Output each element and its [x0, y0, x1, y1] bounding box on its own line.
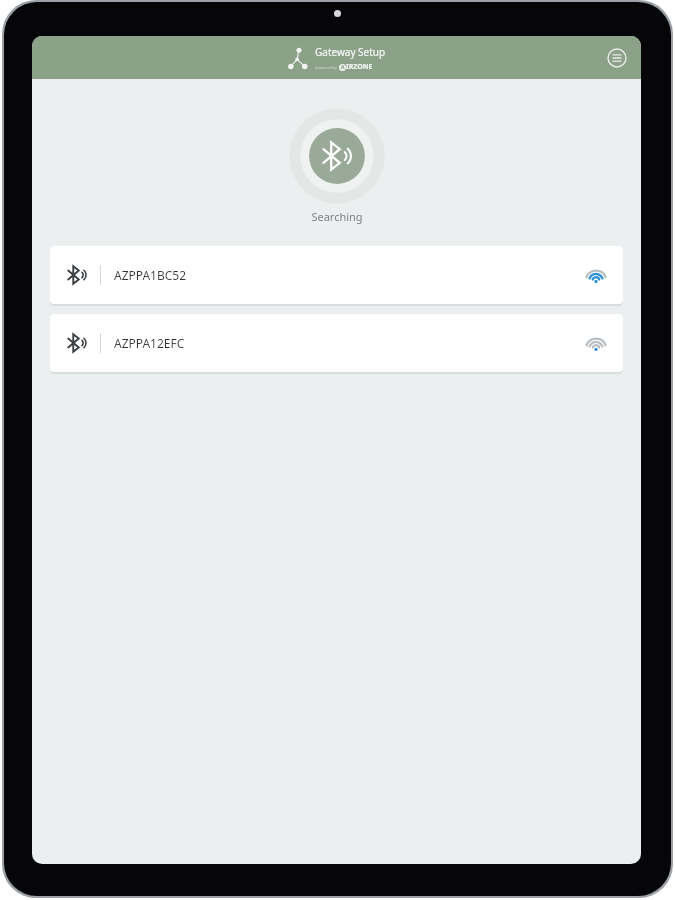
staticText: Searching [311, 209, 363, 224]
staticText: powered by [315, 65, 337, 70]
staticText: AZPPA12EFC [114, 335, 185, 351]
staticText: IRZONE [346, 62, 373, 72]
button[interactable]: AZPPA1BC52 [50, 246, 623, 304]
staticText: A [341, 64, 345, 71]
button[interactable]: AZPPA12EFC [50, 314, 623, 372]
staticText: Gateway Setup [315, 45, 386, 59]
button[interactable]: Menu [606, 47, 628, 69]
staticText: AZPPA1BC52 [114, 267, 187, 283]
